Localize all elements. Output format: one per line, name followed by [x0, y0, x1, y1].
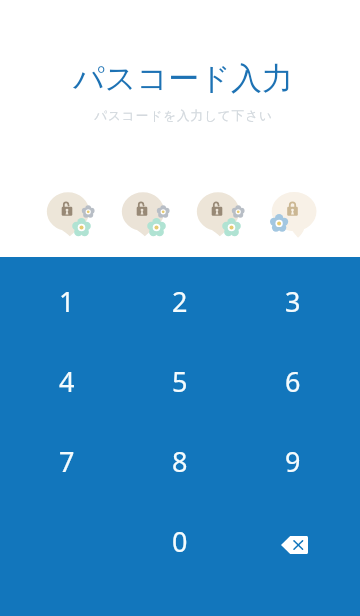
staticText: 7: [59, 443, 75, 480]
button[interactable]: 4: [0, 341, 120, 421]
button[interactable]: 5: [120, 341, 240, 421]
other: Passcode entry, 4 digits: [0, 180, 360, 250]
button[interactable]: 7: [0, 421, 120, 501]
button[interactable]: 8: [120, 421, 240, 501]
button[interactable]: 6: [240, 341, 360, 421]
staticText: 4: [59, 363, 75, 400]
button[interactable]: Delete: [240, 501, 360, 581]
staticText: 1: [59, 283, 75, 320]
staticText: 0: [172, 523, 188, 560]
staticText: 5: [172, 363, 188, 400]
staticText: パスコード入力: [73, 59, 293, 98]
staticText: パスコードを入力して下さい: [94, 108, 273, 124]
staticText: 6: [285, 363, 301, 400]
staticText: 9: [285, 443, 301, 480]
button[interactable]: 9: [240, 421, 360, 501]
staticText: 8: [172, 443, 188, 480]
staticText: 3: [285, 283, 301, 320]
button[interactable]: 0: [120, 501, 240, 581]
button[interactable]: 3: [240, 261, 360, 341]
button[interactable]: 1: [0, 261, 120, 341]
staticText: 2: [172, 283, 188, 320]
button[interactable]: 2: [120, 261, 240, 341]
